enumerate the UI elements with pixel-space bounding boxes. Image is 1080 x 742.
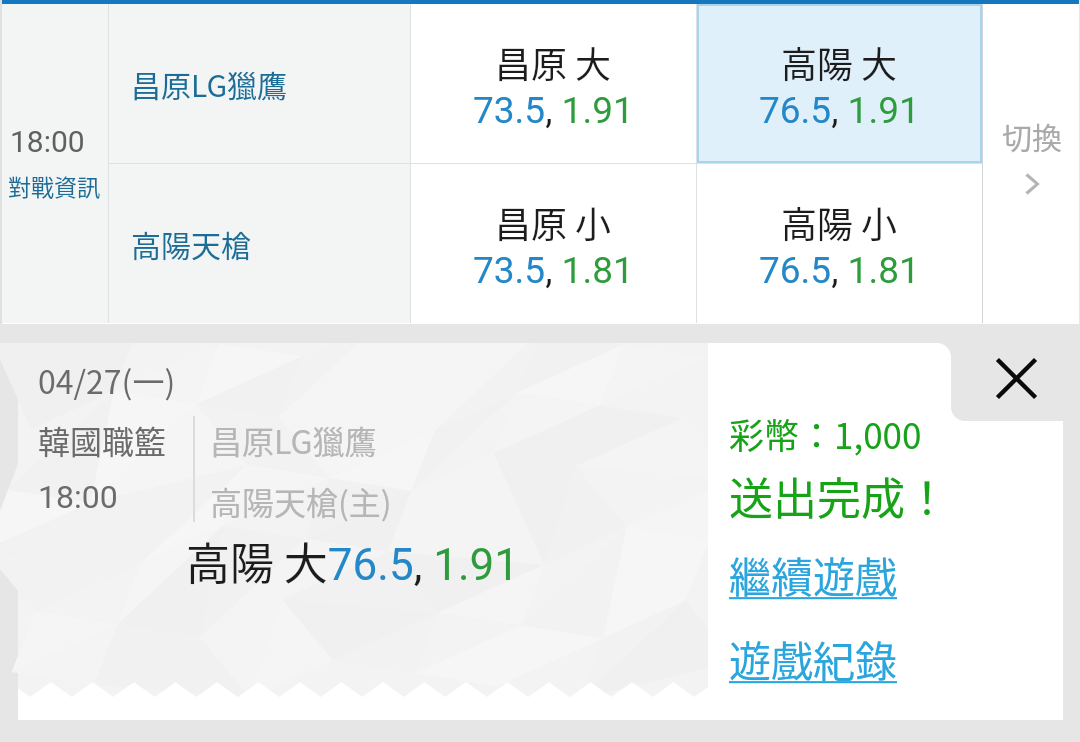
button[interactable]: 高陽 小 (697, 164, 982, 323)
staticText: 昌原 小 (495, 196, 612, 248)
staticText: 昌原LG獵鷹 (131, 62, 288, 105)
staticText: 73.5, 1.91 (473, 89, 634, 132)
staticText: 韓國職籃 (38, 417, 167, 463)
button[interactable]: 昌原LG獵鷹 (109, 4, 410, 163)
staticText: 遊戲紀錄 (729, 628, 898, 689)
button[interactable]: 高陽 大 (697, 4, 982, 163)
staticText: 高陽 大76.5, 1.91 (186, 529, 520, 593)
staticText: 高陽天槍(主) (210, 478, 392, 524)
staticText: 76.5, 1.91 (759, 89, 920, 132)
button[interactable]: Close (966, 328, 1066, 428)
staticText: 18:00 (10, 124, 85, 159)
button[interactable]: 切換 (983, 4, 1080, 323)
staticText: 04/27(一) (38, 357, 176, 403)
staticText: 76.5, 1.81 (759, 249, 920, 292)
staticText: 切換 (1002, 114, 1062, 157)
button[interactable]: 高陽天槍 (109, 164, 410, 323)
staticText: 對戰資訊 (8, 169, 100, 202)
button[interactable]: 繼續遊戲 (729, 544, 898, 605)
staticText: 昌原 大 (495, 36, 612, 88)
button[interactable]: 昌原 小 (411, 164, 696, 323)
button[interactable]: 遊戲紀錄 (729, 628, 898, 689)
staticText: 高陽 大 (781, 36, 898, 88)
staticText: 送出完成！ (729, 464, 949, 528)
staticText: 昌原LG獵鷹 (210, 417, 377, 463)
staticText: 繼續遊戲 (729, 544, 898, 605)
staticText: 18:00 (38, 478, 118, 516)
staticText: 73.5, 1.81 (473, 249, 634, 292)
staticText: 高陽天槍 (131, 222, 251, 265)
staticText: 高陽 小 (781, 196, 898, 248)
staticText: 彩幣：1,000 (729, 408, 922, 459)
button[interactable]: 昌原 大 (411, 4, 696, 163)
